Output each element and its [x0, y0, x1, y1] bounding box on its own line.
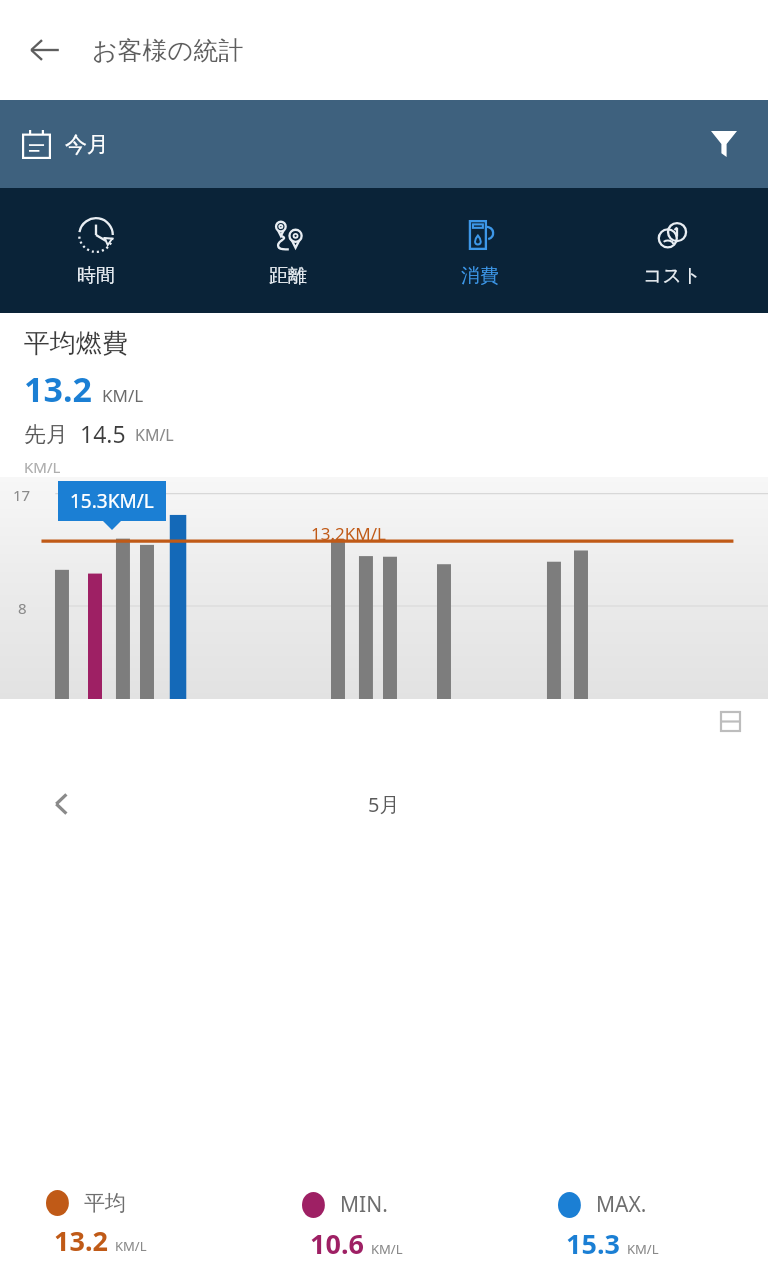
staticText: 10.6	[310, 1225, 364, 1262]
button[interactable]: Previous month	[36, 778, 88, 830]
button[interactable]: Calendar view	[712, 703, 748, 739]
staticText: MAX.	[596, 1190, 647, 1219]
staticText: 14.5	[80, 418, 126, 449]
staticText: 距離	[269, 264, 307, 288]
staticText: 時間	[77, 264, 115, 288]
staticText: MIN.	[340, 1190, 388, 1219]
staticText: 今月	[65, 131, 109, 159]
staticText: KM/L	[627, 1240, 659, 1258]
staticText: KM/L	[115, 1237, 147, 1255]
staticText: 消費	[461, 264, 499, 288]
button[interactable]: 時間	[0, 188, 192, 313]
staticText: 5月	[368, 791, 400, 818]
staticText: 先月	[24, 421, 68, 449]
staticText: 平均	[84, 1190, 126, 1216]
button[interactable]: 15.3KM/L	[70, 488, 154, 514]
staticText: KM/L	[24, 457, 61, 477]
staticText: 17	[13, 485, 31, 505]
staticText: 13.2	[24, 366, 92, 412]
staticText: KM/L	[371, 1240, 403, 1258]
staticText: KM/L	[102, 384, 144, 407]
button[interactable]: MIN.	[302, 1190, 512, 1262]
staticText: コスト	[643, 264, 702, 288]
staticText: 13.2KM/L	[311, 522, 386, 545]
staticText: お客様の統計	[92, 35, 244, 66]
button[interactable]: Filter	[696, 116, 752, 172]
button[interactable]: 今月	[22, 130, 109, 159]
staticText: KM/L	[135, 424, 174, 446]
button[interactable]: 距離	[192, 188, 384, 313]
staticText: 8	[18, 598, 27, 618]
button[interactable]: 平均	[46, 1190, 256, 1259]
staticText: 13.2	[54, 1222, 108, 1259]
button[interactable]: MAX.	[558, 1190, 768, 1262]
button[interactable]: Back	[14, 19, 76, 81]
button[interactable]: コスト	[576, 188, 768, 313]
staticText: 15.3	[566, 1225, 620, 1262]
staticText: 15.3KM/L	[70, 488, 154, 514]
button[interactable]: 消費	[384, 188, 576, 313]
staticText: 平均燃費	[24, 327, 128, 360]
